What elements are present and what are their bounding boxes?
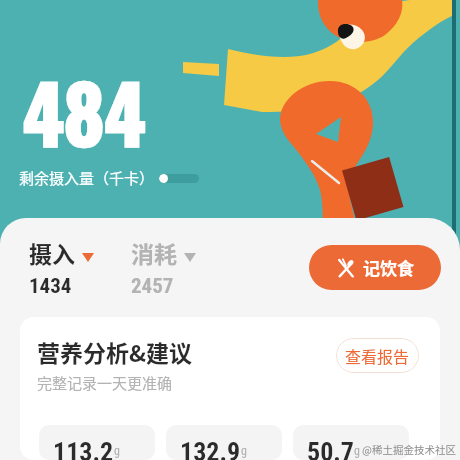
staticText: g — [241, 444, 247, 458]
staticText: @稀土掘金技术社区 — [362, 442, 456, 457]
staticText: g — [354, 444, 360, 458]
staticText: 1434 — [29, 274, 72, 299]
staticText: 113.2 — [53, 437, 114, 460]
button[interactable]: 查看报告 — [336, 338, 419, 373]
staticText: 完整记录一天更准确 — [37, 372, 173, 394]
staticText: 2457 — [131, 274, 174, 299]
other: Record food — [336, 258, 356, 278]
staticText: 剩余摄入量（千卡） — [19, 167, 155, 189]
staticText: 132.9 — [180, 437, 241, 460]
staticText: 记饮食 — [363, 255, 414, 280]
staticText: 营养分析&建议 — [37, 335, 193, 368]
staticText: 消耗 — [131, 236, 177, 269]
staticText: 摄入 — [29, 236, 75, 269]
staticText: g — [114, 444, 120, 458]
staticText: 50.7 — [307, 437, 354, 460]
button[interactable]: 113.2 — [39, 425, 155, 460]
staticText: 查看报告 — [345, 344, 410, 367]
button[interactable]: 132.9 — [166, 425, 282, 460]
button[interactable]: Record food — [309, 245, 441, 290]
staticText: 484 — [23, 53, 146, 169]
button[interactable]: 50.7 — [293, 425, 409, 460]
button[interactable]: 摄入 — [29, 236, 94, 299]
button[interactable]: 消耗 — [131, 236, 196, 299]
